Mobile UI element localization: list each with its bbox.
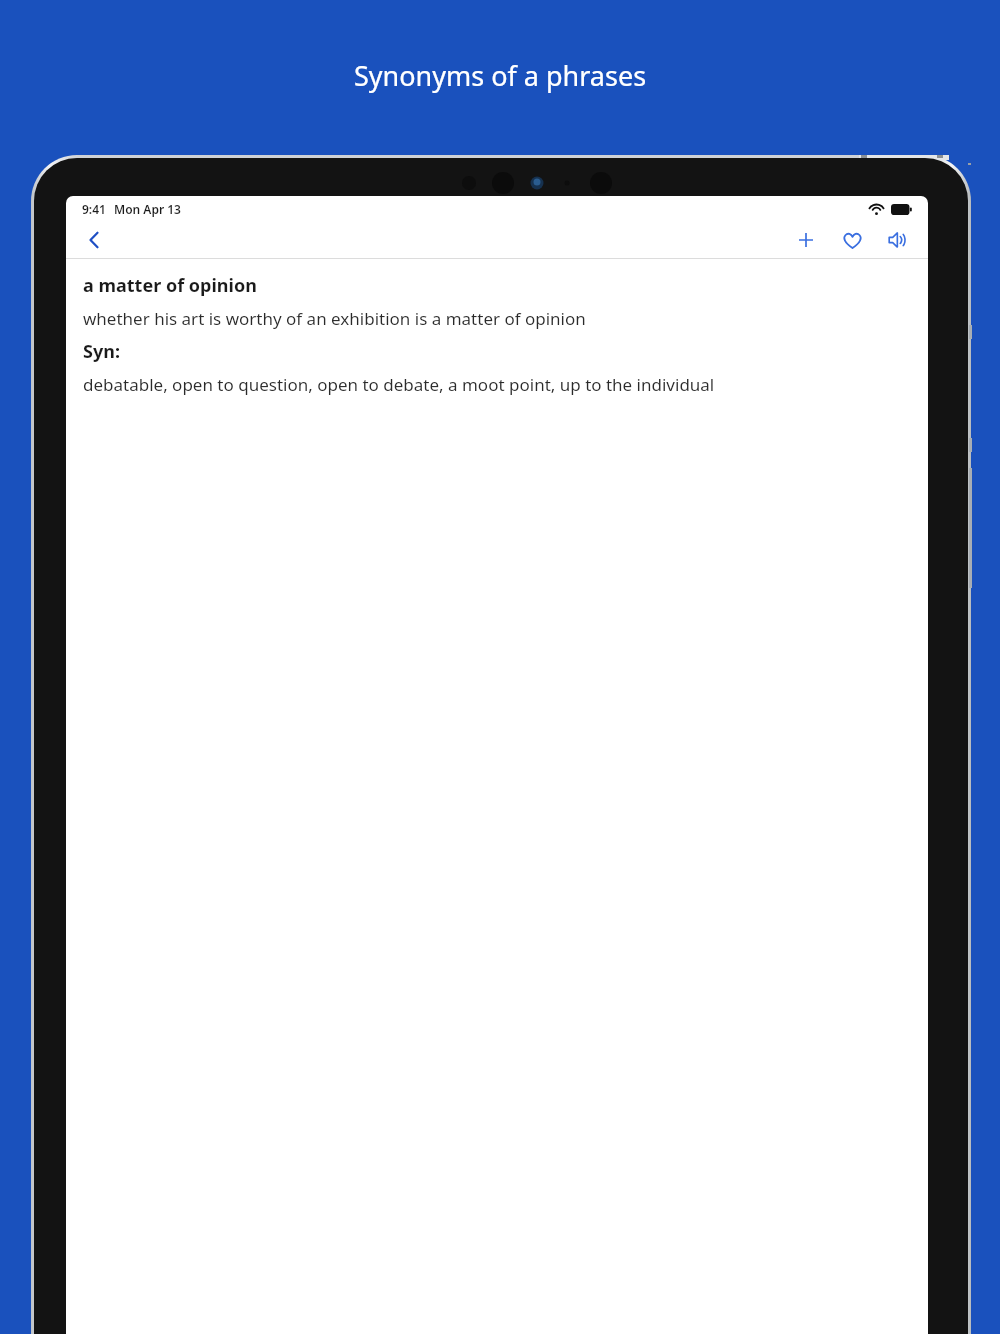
staticText: Mon Apr 13: [114, 201, 181, 217]
staticText: whether his art is worthy of an exhibiti…: [83, 307, 586, 330]
staticText: Synonyms of a phrases: [0, 57, 1000, 94]
button[interactable]: Speak: [878, 222, 918, 258]
staticText: Syn:: [83, 339, 120, 364]
button[interactable]: Add: [786, 222, 826, 258]
button[interactable]: Favorite: [832, 222, 872, 258]
staticText: a matter of opinion: [83, 273, 257, 298]
staticText: 9:41: [82, 201, 106, 217]
staticText: debatable, open to question, open to deb…: [83, 373, 715, 396]
button[interactable]: Back: [74, 222, 114, 258]
